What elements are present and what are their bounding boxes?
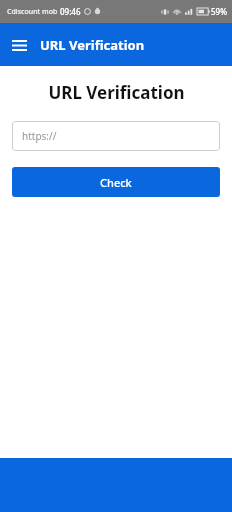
staticText: URL Verification [48,81,185,104]
button[interactable]: https:// [12,121,220,151]
button[interactable]: Check [12,167,220,197]
staticText: 09:46 [60,6,81,17]
staticText: Cdiscount mob [7,7,58,17]
staticText: https:// [22,129,57,143]
button[interactable]: Open navigation menu [4,30,34,60]
staticText: URL Verification [40,36,145,54]
staticText: Check [100,175,132,190]
staticText: 59% [211,6,227,17]
